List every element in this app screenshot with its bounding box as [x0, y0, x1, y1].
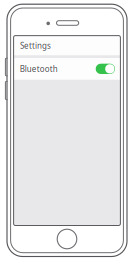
staticText: Settings: [20, 40, 51, 51]
button[interactable]: Bluetooth: [14, 58, 120, 80]
staticText: Bluetooth: [20, 63, 58, 74]
